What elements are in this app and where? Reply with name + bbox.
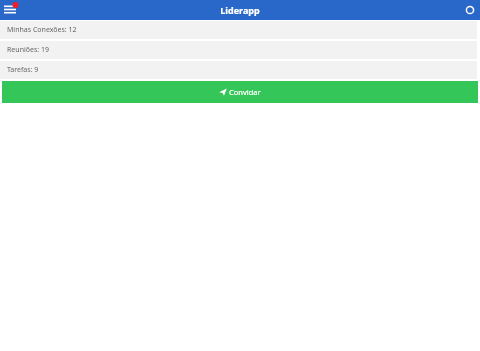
- button[interactable]: Tarefas: 9: [0, 61, 477, 79]
- staticText: Tarefas: 9: [7, 65, 39, 75]
- staticText: Convidar: [229, 87, 261, 97]
- staticText: Liderapp: [220, 4, 260, 16]
- button[interactable]: Convidar: [2, 81, 478, 103]
- button[interactable]: Minhas Conexões: 12: [0, 21, 477, 39]
- button[interactable]: Menu: [0, 0, 20, 20]
- button[interactable]: Reuniões: 19: [0, 41, 477, 59]
- staticText: Reuniões: 19: [7, 45, 49, 55]
- button[interactable]: Refresh: [460, 0, 480, 20]
- staticText: Minhas Conexões: 12: [7, 25, 77, 35]
